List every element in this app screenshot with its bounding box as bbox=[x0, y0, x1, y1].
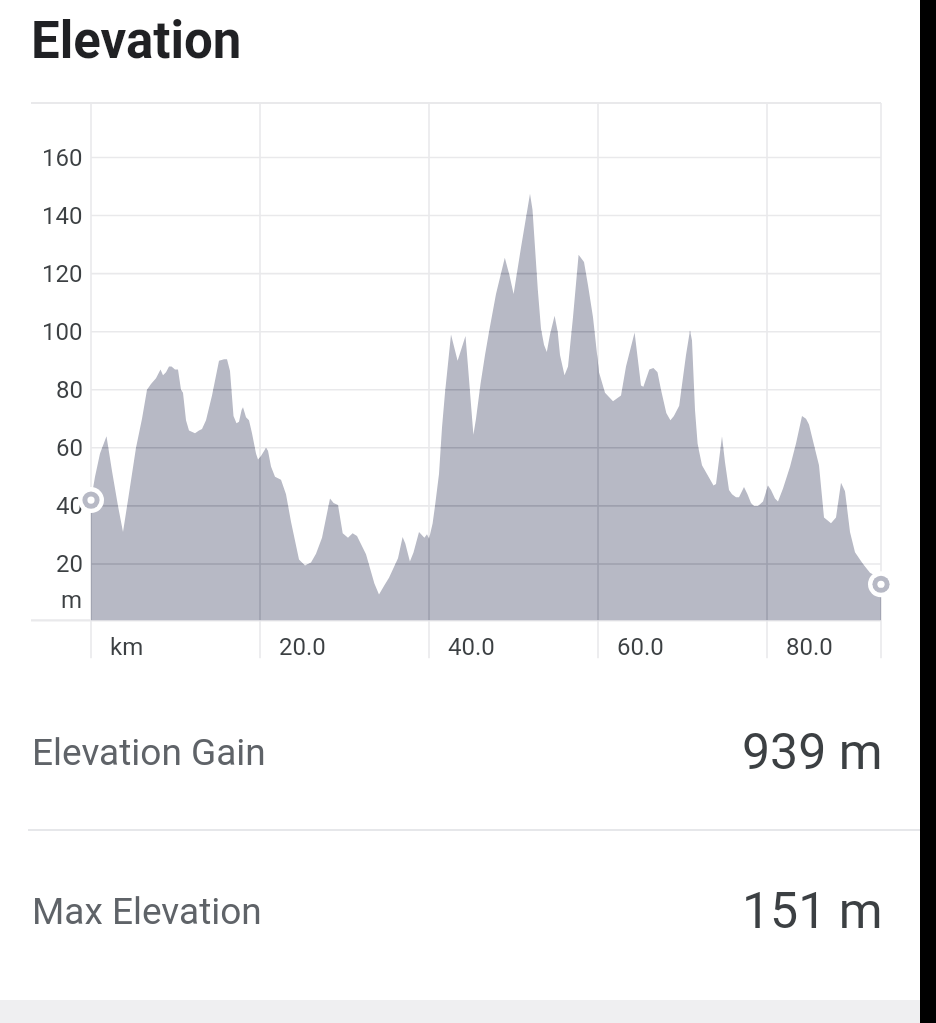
staticText: Elevation Gain bbox=[32, 731, 266, 774]
other: Elevation profile chart bbox=[0, 80, 920, 680]
staticText: Max Elevation bbox=[32, 890, 262, 933]
button[interactable]: Elevation Gain bbox=[0, 675, 920, 830]
button[interactable]: Max Elevation bbox=[0, 834, 920, 989]
staticText: 151 m bbox=[742, 882, 883, 941]
staticText: Elevation bbox=[31, 11, 242, 71]
staticText: 939 m bbox=[742, 723, 883, 782]
